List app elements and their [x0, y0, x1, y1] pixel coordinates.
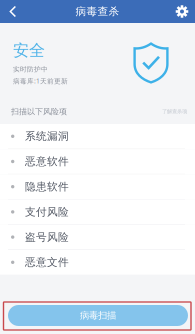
staticText: 病毒库:1天前更新 — [13, 76, 68, 85]
staticText: 支付风险 — [25, 205, 69, 218]
button[interactable]: 系统漏洞 — [0, 124, 195, 149]
staticText: 恶意文件 — [25, 256, 69, 269]
staticText: 实时防护中 — [13, 65, 48, 73]
staticText: 恶意软件 — [25, 155, 69, 168]
staticText: 安全 — [13, 41, 45, 60]
button[interactable]: 恶意软件 — [0, 149, 195, 174]
button[interactable]: 恶意文件 — [0, 250, 195, 275]
staticText: 扫描以下风险项 — [11, 107, 67, 116]
button[interactable]: 支付风险 — [0, 200, 195, 225]
staticText: 系统漏洞 — [25, 130, 69, 143]
button[interactable]: 病毒扫描 — [8, 305, 188, 326]
staticText: 盗号风险 — [25, 230, 69, 244]
button[interactable]: Back — [0, 0, 26, 23]
button[interactable]: 隐患软件 — [0, 174, 195, 200]
staticText: 隐患软件 — [25, 180, 69, 193]
button[interactable]: Settings — [169, 0, 195, 23]
button[interactable]: 盗号风险 — [0, 225, 195, 250]
staticText: 病毒查杀 — [75, 5, 119, 18]
staticText: 病毒扫描 — [80, 310, 116, 321]
button[interactable]: 了解查杀项 — [162, 108, 187, 115]
staticText: 了解查杀项 — [162, 108, 187, 115]
